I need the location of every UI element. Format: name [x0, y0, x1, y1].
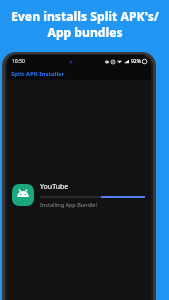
other: App icon: [12, 184, 34, 206]
staticText: YouTube: [40, 182, 69, 192]
button[interactable]: App icon: [7, 178, 151, 212]
staticText: 10:50: [12, 58, 25, 65]
staticText: Split APK Installer: [11, 70, 65, 78]
staticText: Even installs Split APK's/: [11, 8, 159, 24]
staticText: Installing App Bundle!: [40, 201, 97, 208]
staticText: App bundles: [47, 24, 123, 40]
button[interactable]: Split APK Installer: [7, 68, 151, 80]
staticText: 92%: [131, 58, 141, 65]
